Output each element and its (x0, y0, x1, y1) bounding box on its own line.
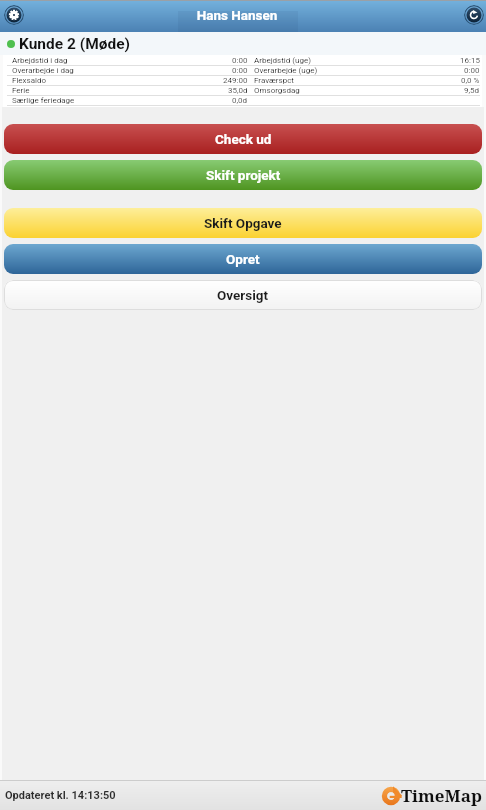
staticText: TimeMap (401, 784, 482, 807)
staticText: Arbejdstid i dag (12, 56, 68, 65)
button[interactable]: Skift Opgave (4, 208, 482, 238)
staticText: Fraværspct (254, 76, 294, 85)
button[interactable]: Opret (4, 244, 482, 274)
staticText: Opdateret kl. 14:13:50 (5, 789, 116, 802)
staticText: 0,0 % (461, 76, 480, 85)
staticText: 0:00 (232, 56, 248, 65)
staticText: 0:00 (232, 66, 248, 75)
staticText: Ferie (12, 86, 30, 95)
staticText: Skift projekt (206, 167, 281, 183)
staticText: 0,0d (232, 96, 248, 105)
staticText: 16:15 (460, 56, 480, 65)
staticText: 35,0d (228, 86, 248, 95)
staticText: 0:00 (464, 66, 480, 75)
staticText: Check ud (215, 131, 272, 147)
staticText: Særlige feriedage (12, 96, 75, 105)
staticText: 249:00 (223, 76, 248, 85)
button[interactable]: Refresh (464, 5, 484, 25)
button[interactable]: Check ud (4, 124, 482, 154)
staticText: Kunde 2 (Møde) (19, 35, 131, 53)
staticText: Omsorgsdag (254, 86, 300, 95)
staticText: Overarbejde i dag (12, 66, 74, 75)
staticText: Opret (226, 251, 260, 267)
staticText: Skift Opgave (204, 215, 282, 231)
button[interactable]: Settings (4, 5, 24, 25)
staticText: Hans Hansen (177, 7, 297, 23)
staticText: Overarbejde (uge) (254, 66, 318, 75)
staticText: Arbejdstid (uge) (254, 56, 311, 65)
staticText: Flexsaldo (12, 76, 47, 85)
staticText: 9,5d (464, 86, 480, 95)
button[interactable]: Oversigt (4, 280, 482, 310)
button[interactable]: Skift projekt (4, 160, 482, 190)
staticText: Oversigt (217, 287, 269, 303)
